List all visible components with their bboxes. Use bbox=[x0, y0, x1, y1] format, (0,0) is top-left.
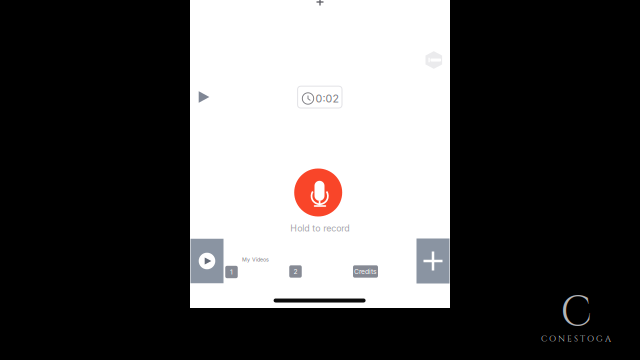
staticText: 0:02 bbox=[315, 92, 339, 105]
staticText: C bbox=[560, 285, 591, 341]
button[interactable]: New recording bbox=[416, 238, 449, 283]
staticText: C O N E S T O G A bbox=[541, 333, 611, 345]
staticText: Credits bbox=[354, 267, 377, 276]
button[interactable]: Previous clip bbox=[194, 86, 214, 108]
staticText: 1 bbox=[230, 268, 233, 276]
staticText: My Videos bbox=[242, 256, 269, 263]
staticText: Hold to record bbox=[290, 223, 349, 234]
staticText: 2 bbox=[293, 267, 297, 276]
button[interactable]: Hold to record bbox=[294, 168, 342, 216]
button[interactable]: My videos bbox=[190, 239, 223, 283]
